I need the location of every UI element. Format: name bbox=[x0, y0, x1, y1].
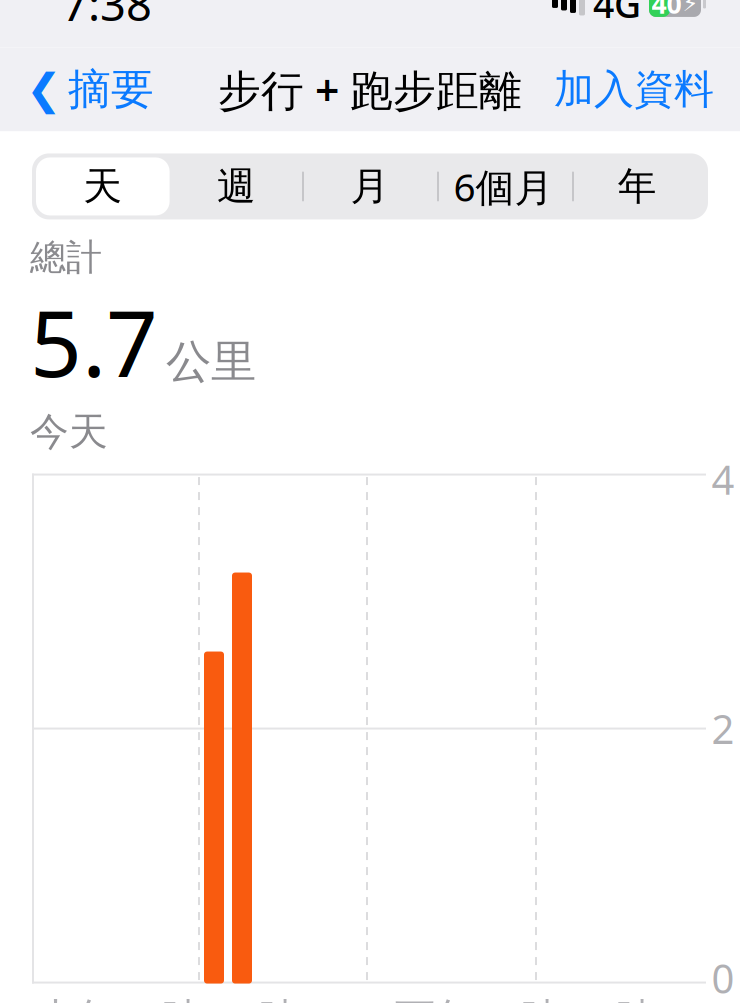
staticText: 今天 bbox=[30, 408, 108, 456]
staticText: 40 bbox=[651, 0, 681, 21]
button[interactable]: 週 bbox=[170, 157, 303, 215]
staticText: 步行 + 跑步距離 bbox=[218, 61, 522, 118]
staticText: 4 bbox=[711, 453, 734, 506]
button[interactable]: 年 bbox=[570, 157, 704, 215]
button[interactable]: 月 bbox=[303, 157, 437, 215]
staticText: 4G bbox=[593, 0, 641, 28]
staticText: 總計 bbox=[30, 235, 102, 280]
staticText: 下午12時 bbox=[395, 990, 561, 1003]
staticText: ⚡︎ bbox=[682, 0, 698, 16]
button[interactable]: ❮ bbox=[22, 55, 158, 124]
staticText: 月 bbox=[350, 163, 389, 210]
staticText: 2 bbox=[711, 702, 734, 755]
button[interactable]: 6個月 bbox=[437, 157, 570, 215]
staticText: 6時 bbox=[593, 990, 656, 1003]
button[interactable]: 加入資料 bbox=[550, 57, 718, 122]
staticText: 週 bbox=[217, 163, 256, 210]
button[interactable]: 天 bbox=[36, 157, 170, 215]
staticText: 6時 bbox=[236, 990, 299, 1003]
staticText: ❮ bbox=[26, 65, 62, 114]
staticText: 年 bbox=[618, 163, 657, 210]
staticText: 7:38 bbox=[62, 0, 152, 33]
staticText: 5.7 bbox=[30, 282, 158, 402]
staticText: 6個月 bbox=[454, 161, 554, 212]
staticText: 0 bbox=[711, 951, 734, 1003]
staticText: 加入資料 bbox=[554, 65, 714, 114]
staticText: 上午12時 bbox=[36, 990, 202, 1003]
staticText: 天 bbox=[83, 163, 122, 210]
staticText: 公里 bbox=[166, 334, 256, 390]
staticText: 摘要 bbox=[68, 63, 154, 116]
